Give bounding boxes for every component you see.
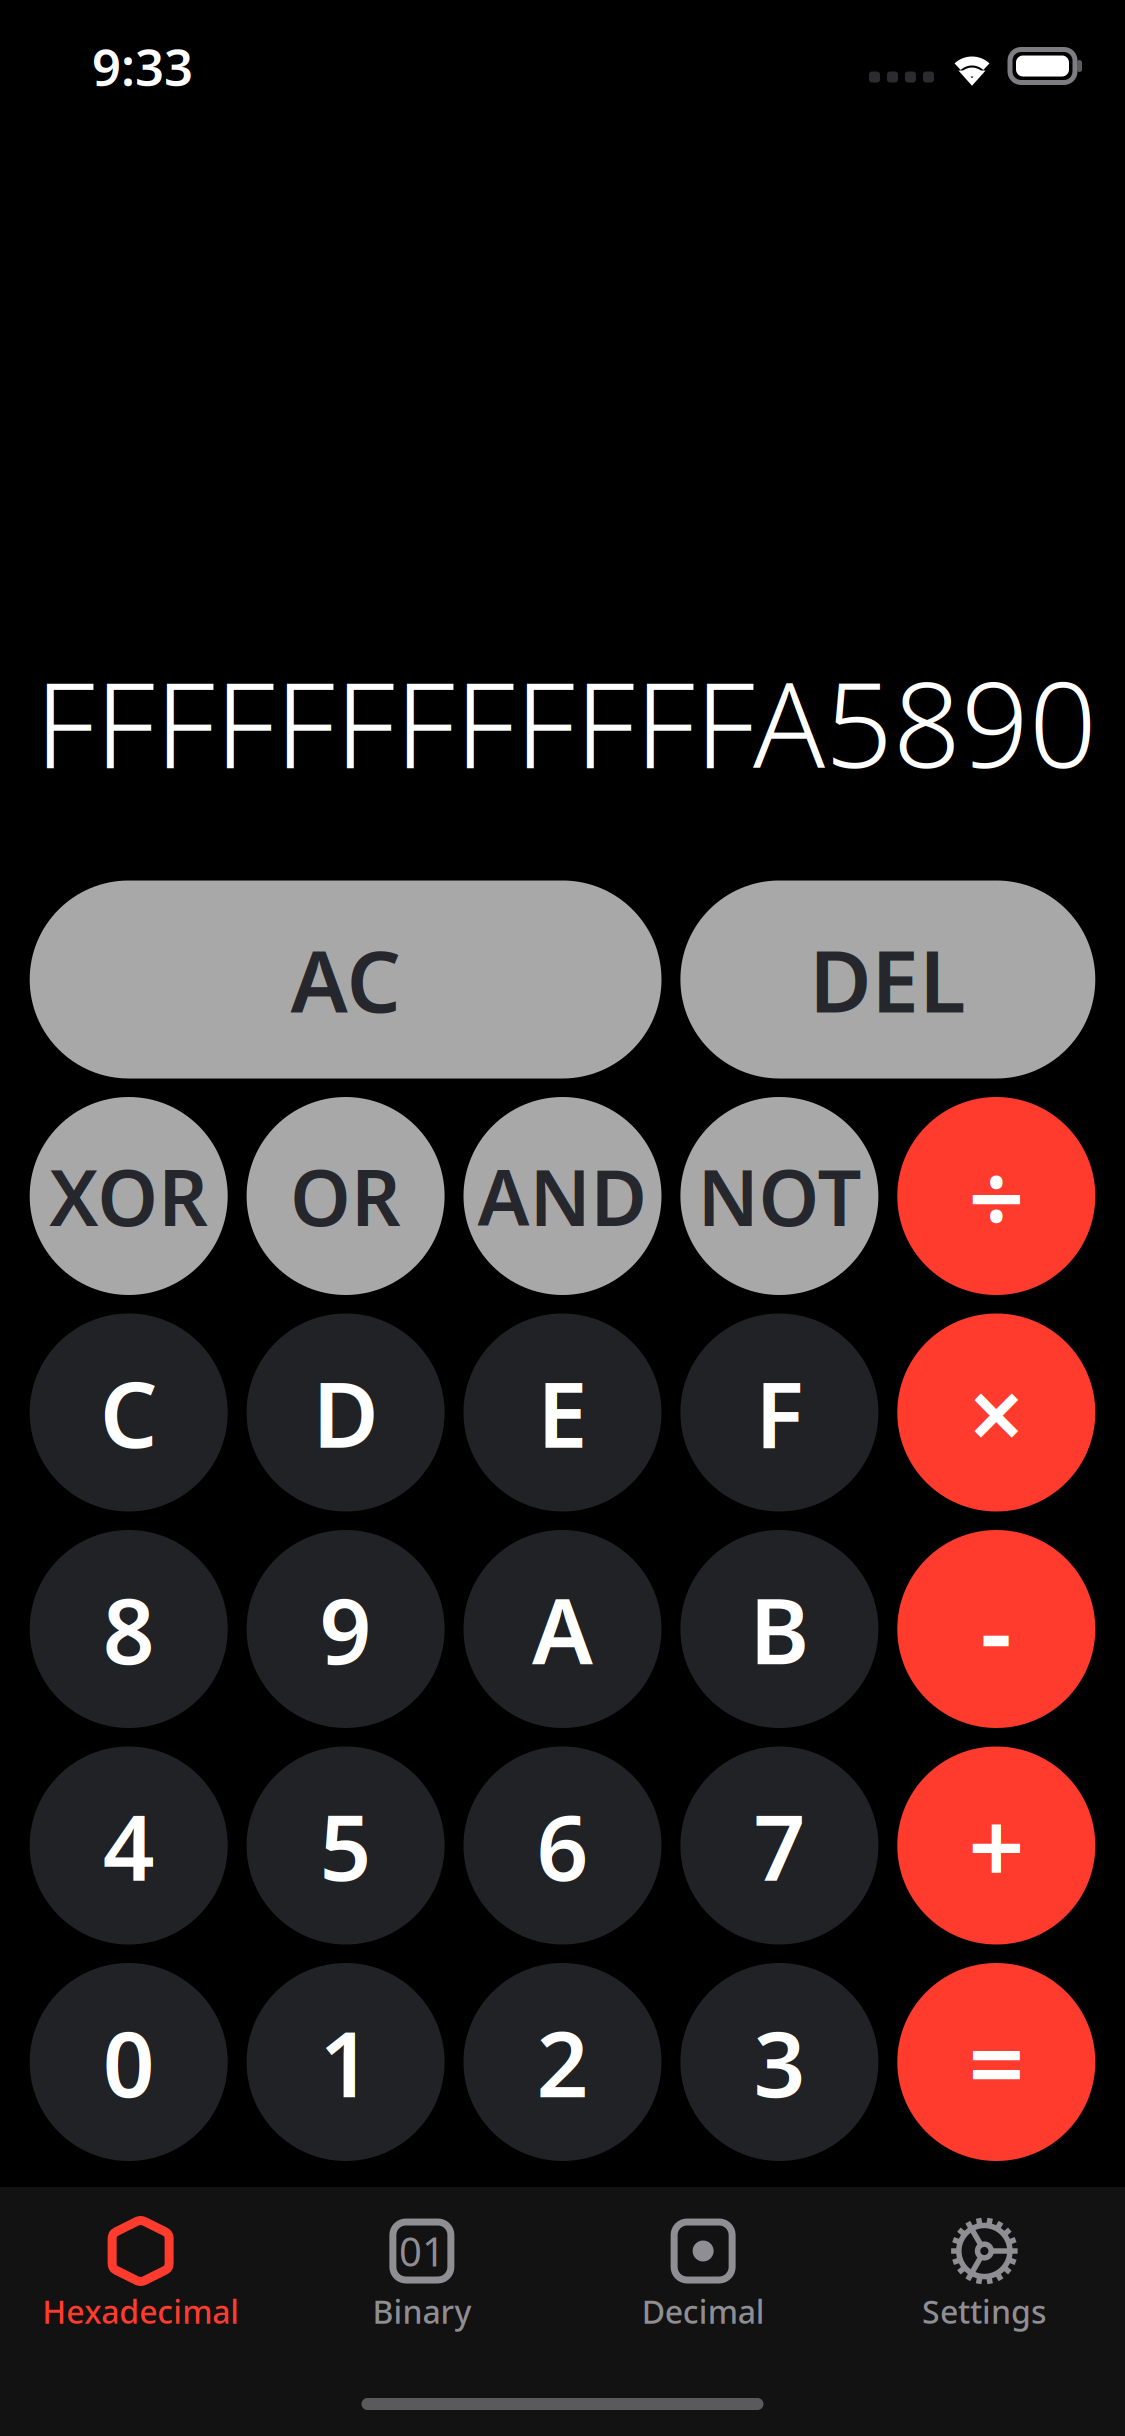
staticText: 2: [536, 2002, 588, 2122]
staticText: AND: [477, 1145, 647, 1247]
button[interactable]: E: [463, 1313, 661, 1511]
staticText: 0: [103, 2002, 155, 2122]
staticText: Decimal: [642, 2290, 765, 2332]
button[interactable]: NOT: [680, 1097, 878, 1295]
staticText: =: [968, 1996, 1024, 2127]
staticText: ÷: [968, 1130, 1024, 1261]
staticText: D: [313, 1352, 379, 1473]
staticText: Settings: [922, 2290, 1047, 2332]
staticText: AC: [291, 923, 401, 1036]
button[interactable]: D: [247, 1313, 445, 1511]
button[interactable]: 1: [247, 1963, 445, 2161]
staticText: 7: [753, 1785, 805, 1906]
staticText: Hexadecimal: [42, 2290, 239, 2332]
staticText: OR: [290, 1145, 401, 1247]
button[interactable]: Hexadecimal: [0, 2187, 281, 2342]
button[interactable]: ÷: [897, 1097, 1095, 1295]
staticText: -: [980, 1563, 1012, 1694]
staticText: 9: [320, 1569, 372, 1689]
button[interactable]: 01: [281, 2187, 562, 2342]
button[interactable]: A: [463, 1530, 661, 1728]
staticText: NOT: [697, 1145, 861, 1247]
staticText: 5: [320, 1785, 372, 1906]
button[interactable]: C: [30, 1313, 228, 1511]
button[interactable]: -: [897, 1530, 1095, 1728]
button[interactable]: AC: [30, 880, 661, 1078]
button[interactable]: OR: [247, 1097, 445, 1295]
staticText: 01: [399, 2224, 445, 2277]
button[interactable]: DEL: [680, 880, 1095, 1078]
button[interactable]: Settings: [844, 2187, 1125, 2342]
button[interactable]: AND: [463, 1097, 661, 1295]
button[interactable]: =: [897, 1963, 1095, 2161]
staticText: E: [537, 1352, 588, 1473]
staticText: FFFFFFFFFFFFA5890: [35, 643, 1097, 800]
staticText: XOR: [49, 1145, 208, 1247]
staticText: B: [749, 1569, 809, 1689]
button[interactable]: XOR: [30, 1097, 228, 1295]
button[interactable]: Decimal: [562, 2187, 844, 2342]
button[interactable]: 9: [247, 1530, 445, 1728]
staticText: F: [755, 1352, 804, 1473]
staticText: 8: [103, 1569, 155, 1689]
staticText: C: [100, 1352, 158, 1473]
button[interactable]: 3: [680, 1963, 878, 2161]
staticText: ×: [968, 1347, 1024, 1478]
button[interactable]: +: [897, 1746, 1095, 1944]
button[interactable]: 7: [680, 1746, 878, 1944]
button[interactable]: 5: [247, 1746, 445, 1944]
button[interactable]: 4: [30, 1746, 228, 1944]
staticText: 4: [103, 1785, 155, 1906]
staticText: Binary: [372, 2290, 471, 2332]
button[interactable]: 6: [463, 1746, 661, 1944]
staticText: 9:33: [92, 32, 193, 100]
staticText: A: [532, 1569, 593, 1689]
staticText: 3: [753, 2002, 805, 2122]
staticText: 6: [536, 1785, 588, 1906]
button[interactable]: 2: [463, 1963, 661, 2161]
button[interactable]: 0: [30, 1963, 228, 2161]
staticText: +: [968, 1780, 1024, 1911]
staticText: 1: [320, 2002, 372, 2122]
button[interactable]: F: [680, 1313, 878, 1511]
button[interactable]: 8: [30, 1530, 228, 1728]
button[interactable]: ×: [897, 1313, 1095, 1511]
button[interactable]: B: [680, 1530, 878, 1728]
staticText: DEL: [809, 923, 966, 1036]
